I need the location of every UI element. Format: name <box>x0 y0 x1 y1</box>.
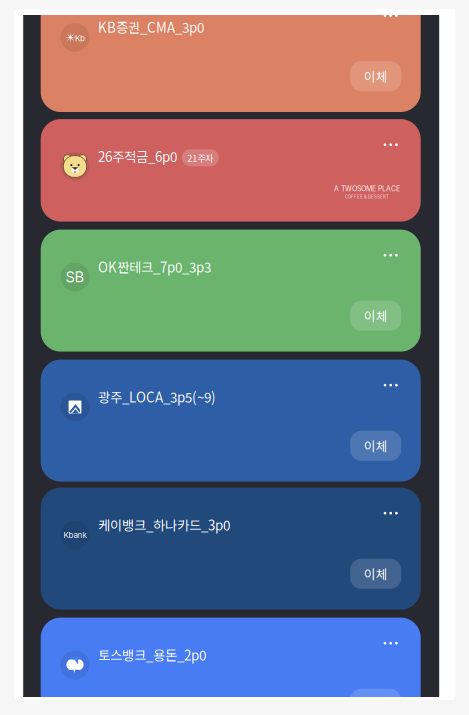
button[interactable]: 이체 <box>350 61 401 91</box>
button[interactable]: 이체 <box>350 559 401 589</box>
staticText: 광주_LOCA_3p5(~9) <box>98 387 216 406</box>
button[interactable]: Kbank <box>41 488 421 610</box>
staticText: A TWOSOME PLACE <box>334 185 400 193</box>
staticText: 이체 <box>364 307 388 325</box>
button[interactable]: More options <box>374 632 408 654</box>
button[interactable]: More options <box>374 374 408 396</box>
button[interactable]: 광주_LOCA_3p5(~9) <box>41 360 421 482</box>
staticText: 이체 <box>364 437 388 455</box>
button[interactable]: More options <box>374 502 408 524</box>
button[interactable]: 이체 <box>350 689 401 715</box>
button[interactable]: 토스뱅크_용돈_2p0 <box>41 618 421 715</box>
staticText: OK짠테크_7p0_3p3 <box>98 257 211 276</box>
button[interactable]: 이체 <box>350 301 401 331</box>
staticText: SB <box>65 268 84 286</box>
staticText: Kbank <box>63 530 86 540</box>
button[interactable]: SB <box>41 230 421 352</box>
staticText: KB증권_CMA_3p0 <box>98 17 204 37</box>
staticText: 26주적금_6p0 <box>98 146 177 166</box>
staticText: Kb <box>75 34 85 43</box>
button[interactable]: 이체 <box>350 431 401 461</box>
button[interactable]: Kb <box>41 0 421 112</box>
staticText: 21주차 <box>187 151 213 164</box>
staticText: 케이뱅크_하나카드_3p0 <box>98 515 230 534</box>
button[interactable]: 26주적금_6p0 <box>41 119 421 222</box>
button[interactable]: More options <box>374 134 408 156</box>
button[interactable]: More options <box>374 5 408 27</box>
button[interactable]: More options <box>374 244 408 266</box>
staticText: COFFEE & DESSERT <box>345 194 389 200</box>
staticText: 토스뱅크_용돈_2p0 <box>98 645 206 664</box>
staticText: 이체 <box>364 565 388 583</box>
staticText: 이체 <box>364 67 388 85</box>
staticText: 이체 <box>364 695 388 713</box>
